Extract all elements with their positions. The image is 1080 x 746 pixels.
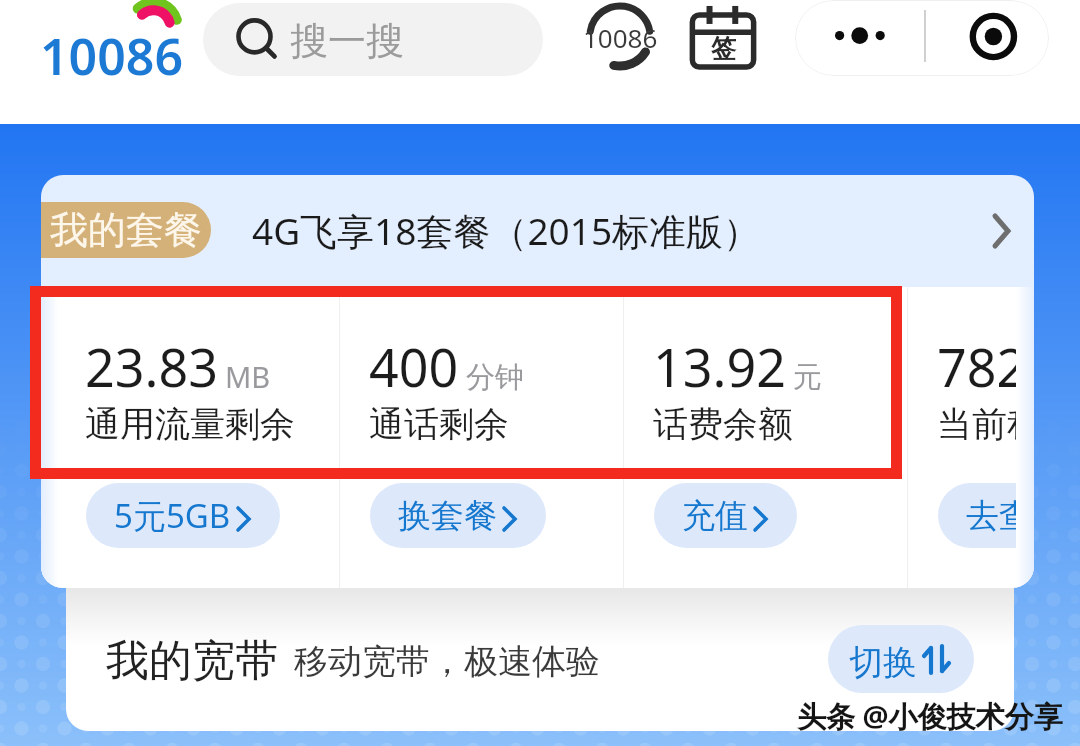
button[interactable]: 切换 (828, 625, 974, 693)
staticText: 分钟 (466, 359, 524, 396)
staticText: 10086 (583, 20, 658, 55)
staticText: 切换 (849, 641, 917, 684)
staticText: 头条 @小俊技术分享 (797, 696, 1063, 736)
staticText: 4G飞享18套餐（2015标准版） (252, 205, 761, 256)
button[interactable]: 更多 (795, 0, 925, 76)
staticText: 通话剩余 (369, 402, 509, 446)
staticText: 23.83 (85, 331, 218, 402)
staticText: 我的套餐 (50, 206, 202, 254)
staticText: 5元5GB (114, 493, 231, 538)
button[interactable]: 去查询 (938, 483, 1034, 548)
staticText: 782 (937, 331, 1027, 402)
staticText: 签 (711, 33, 736, 64)
button[interactable]: 客服 10086 (588, 4, 652, 68)
staticText: 10086 (40, 22, 183, 90)
staticText: 13.92 (653, 331, 786, 402)
staticText: 我的宽带 (106, 634, 278, 688)
staticText: 换套餐 (398, 495, 497, 537)
button[interactable]: 换套餐 (370, 483, 546, 548)
staticText: 当前积分 (937, 402, 1034, 446)
staticText: 移动宽带，极速体验 (294, 640, 600, 683)
staticText: 搜一搜 (290, 17, 404, 65)
button[interactable]: 搜一搜 (203, 3, 543, 76)
staticText: 去查询 (966, 495, 1034, 537)
staticText: 通用流量剩余 (85, 402, 295, 446)
button[interactable]: 5元5GB (86, 483, 280, 548)
staticText: MB (225, 357, 271, 396)
button[interactable]: 关闭 (925, 0, 1049, 76)
staticText: 元 (793, 359, 822, 396)
button[interactable]: 查看套餐详情 (936, 188, 1012, 264)
button[interactable]: 签到 (688, 2, 758, 72)
button[interactable] (66, 565, 1014, 731)
button[interactable]: 充值 (654, 483, 797, 548)
staticText: 话费余额 (653, 402, 793, 446)
staticText: 充值 (682, 495, 748, 537)
staticText: 400 (369, 331, 459, 402)
